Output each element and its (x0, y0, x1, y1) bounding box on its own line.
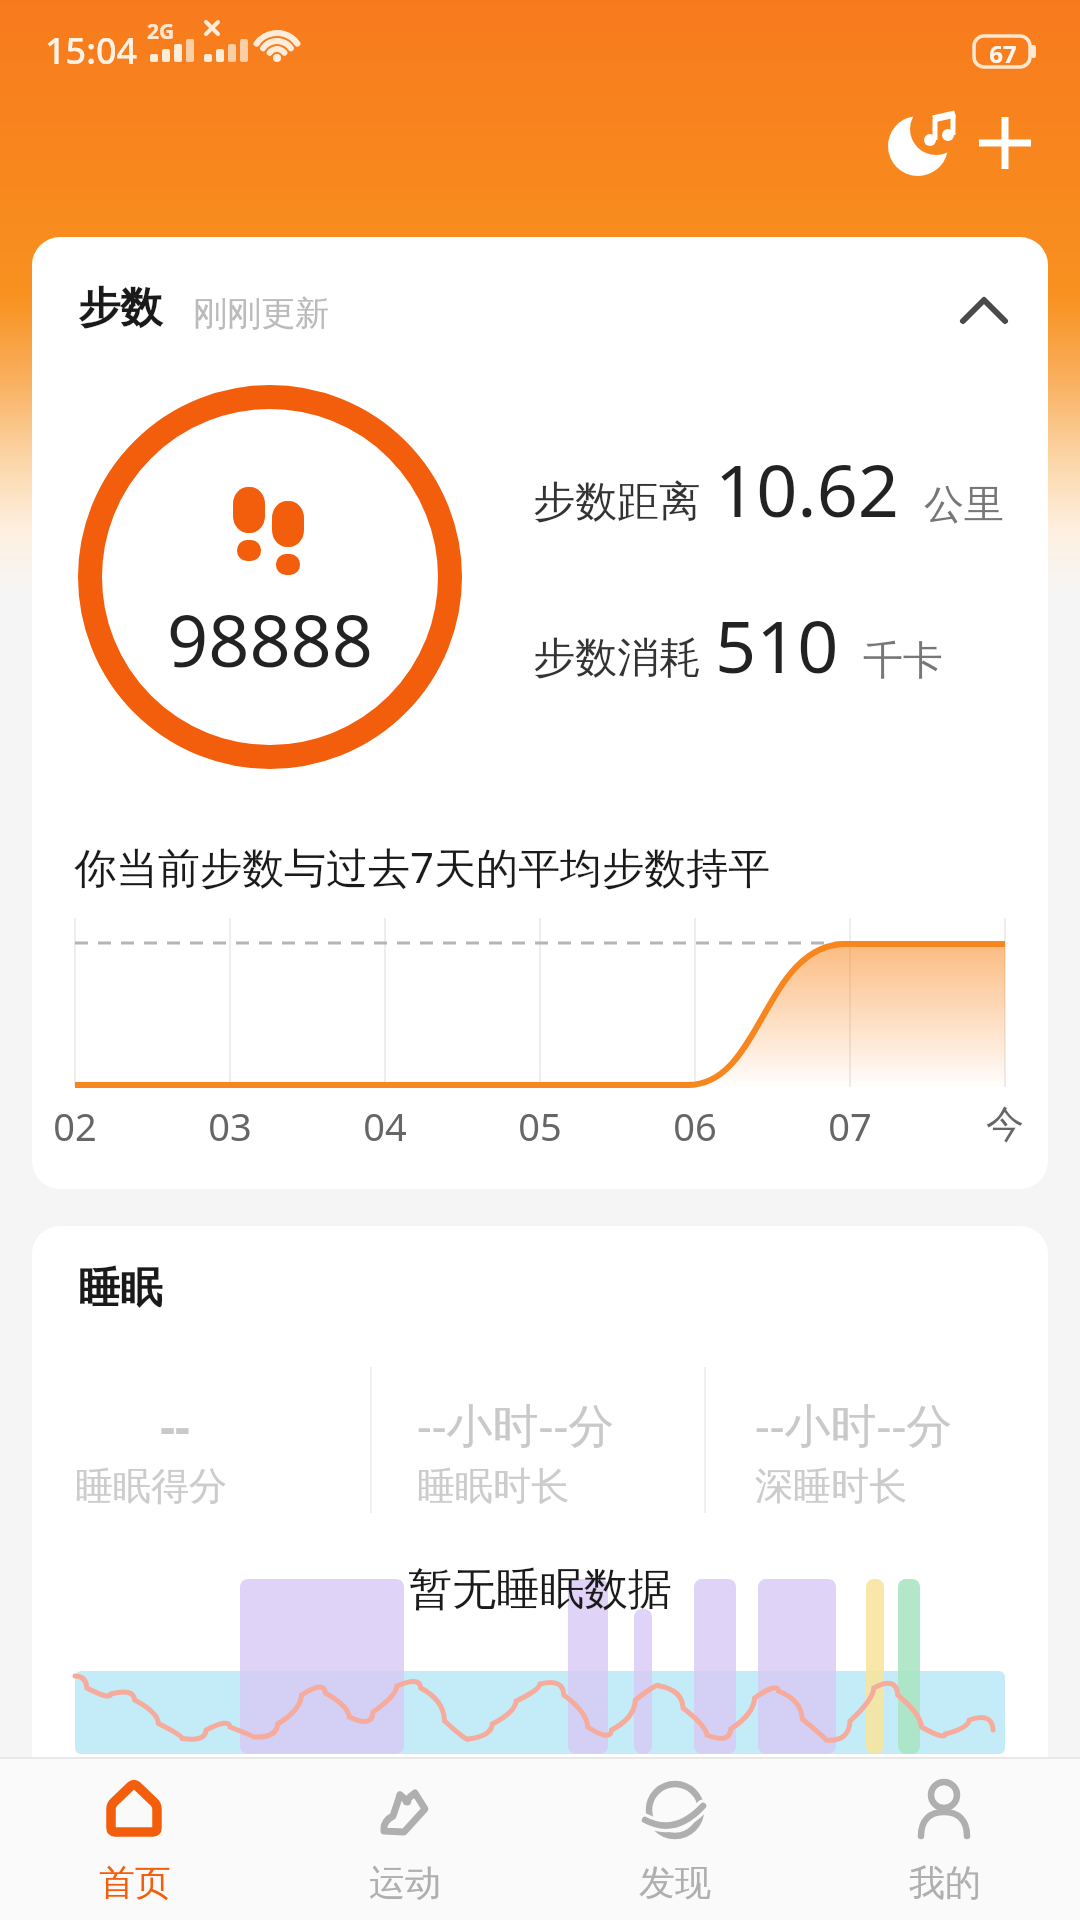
staticText: 我的 (909, 1860, 981, 1905)
staticText: 睡眠时长 (417, 1462, 569, 1510)
staticText: --小时--分 (417, 1393, 615, 1456)
staticText: 公里 (924, 479, 1004, 529)
staticText: 06 (635, 1100, 755, 1152)
button[interactable]: 运动 (270, 1757, 540, 1920)
staticText: 你当前步数与过去7天的平均步数持平 (74, 838, 771, 895)
staticText: 10.62 (715, 440, 900, 538)
staticText: 步数距离 (533, 476, 701, 529)
staticText: 98888 (70, 590, 470, 688)
staticText: 刚刚更新 (193, 292, 329, 335)
staticText: 02 (15, 1100, 135, 1152)
button[interactable] (955, 290, 1015, 330)
staticText: 深睡时长 (755, 1462, 907, 1510)
staticText: 04 (325, 1100, 445, 1152)
staticText: 暂无睡眠数据 (0, 1562, 1080, 1617)
button[interactable]: 首页 (0, 1757, 270, 1920)
staticText: 今 (945, 1100, 1065, 1148)
button[interactable] (32, 1226, 1048, 1757)
staticText: 首页 (99, 1860, 171, 1905)
button[interactable]: 我的 (810, 1757, 1080, 1920)
staticText: -- (75, 1395, 275, 1458)
staticText: 步数 (78, 282, 162, 335)
staticText: --小时--分 (755, 1393, 953, 1456)
staticText: 67 (981, 37, 1025, 70)
staticText: 运动 (369, 1860, 441, 1905)
staticText: 睡眠得分 (75, 1462, 227, 1510)
button[interactable] (975, 113, 1035, 173)
staticText: 05 (480, 1100, 600, 1152)
staticText: 步数消耗 (533, 632, 701, 685)
staticText: 睡眠 (78, 1262, 162, 1315)
button[interactable] (32, 237, 1048, 1189)
staticText: 07 (790, 1100, 910, 1152)
button[interactable] (880, 105, 960, 185)
staticText: 510 (715, 596, 839, 694)
button[interactable]: 发现 (540, 1757, 810, 1920)
staticText: 2G (147, 17, 175, 46)
staticText: 千卡 (863, 635, 943, 685)
staticText: 15:04 (45, 26, 138, 75)
staticText: 03 (170, 1100, 290, 1152)
staticText: 发现 (639, 1860, 711, 1905)
